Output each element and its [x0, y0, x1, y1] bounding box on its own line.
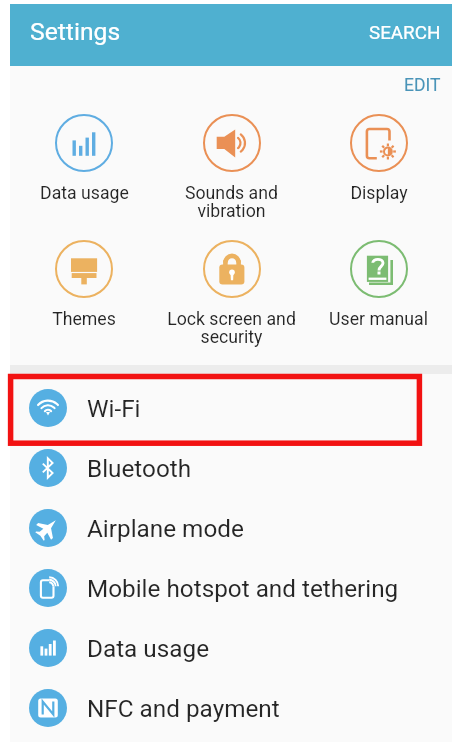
button[interactable]: Lock screen and security	[158, 240, 305, 347]
button[interactable]: EDIT	[386, 67, 452, 104]
staticText: Sounds and vibration	[185, 183, 278, 221]
staticText: SEARCH	[369, 22, 441, 44]
button[interactable]: Display	[305, 114, 452, 204]
staticText: Data usage	[40, 183, 129, 204]
button[interactable]: Mobile hotspot and tethering	[10, 558, 452, 618]
button[interactable]: Data usage	[10, 114, 158, 204]
staticText: Lock screen and security	[167, 309, 296, 347]
button[interactable]: Airplane mode	[10, 498, 452, 558]
button[interactable]: Themes	[10, 240, 158, 330]
staticText: EDIT	[404, 75, 441, 96]
button[interactable]: Data usage	[10, 618, 452, 678]
button[interactable]: NFC and payment	[10, 678, 452, 738]
staticText: NFC and payment	[87, 694, 280, 722]
button[interactable]: Bluetooth	[10, 438, 452, 498]
button[interactable]: User manual	[305, 240, 452, 330]
staticText: User manual	[329, 309, 428, 330]
button[interactable]: Sounds and vibration	[158, 114, 305, 221]
staticText: Bluetooth	[87, 454, 192, 482]
staticText: Mobile hotspot and tethering	[87, 574, 399, 602]
button[interactable]: Wi-Fi	[10, 378, 452, 438]
staticText: Display	[350, 183, 408, 204]
staticText: Themes	[52, 309, 116, 330]
button[interactable]: SEARCH	[351, 12, 452, 54]
staticText: Data usage	[87, 634, 210, 662]
staticText: Settings	[30, 17, 121, 46]
staticText: Airplane mode	[87, 514, 244, 542]
staticText: Wi-Fi	[87, 394, 141, 422]
